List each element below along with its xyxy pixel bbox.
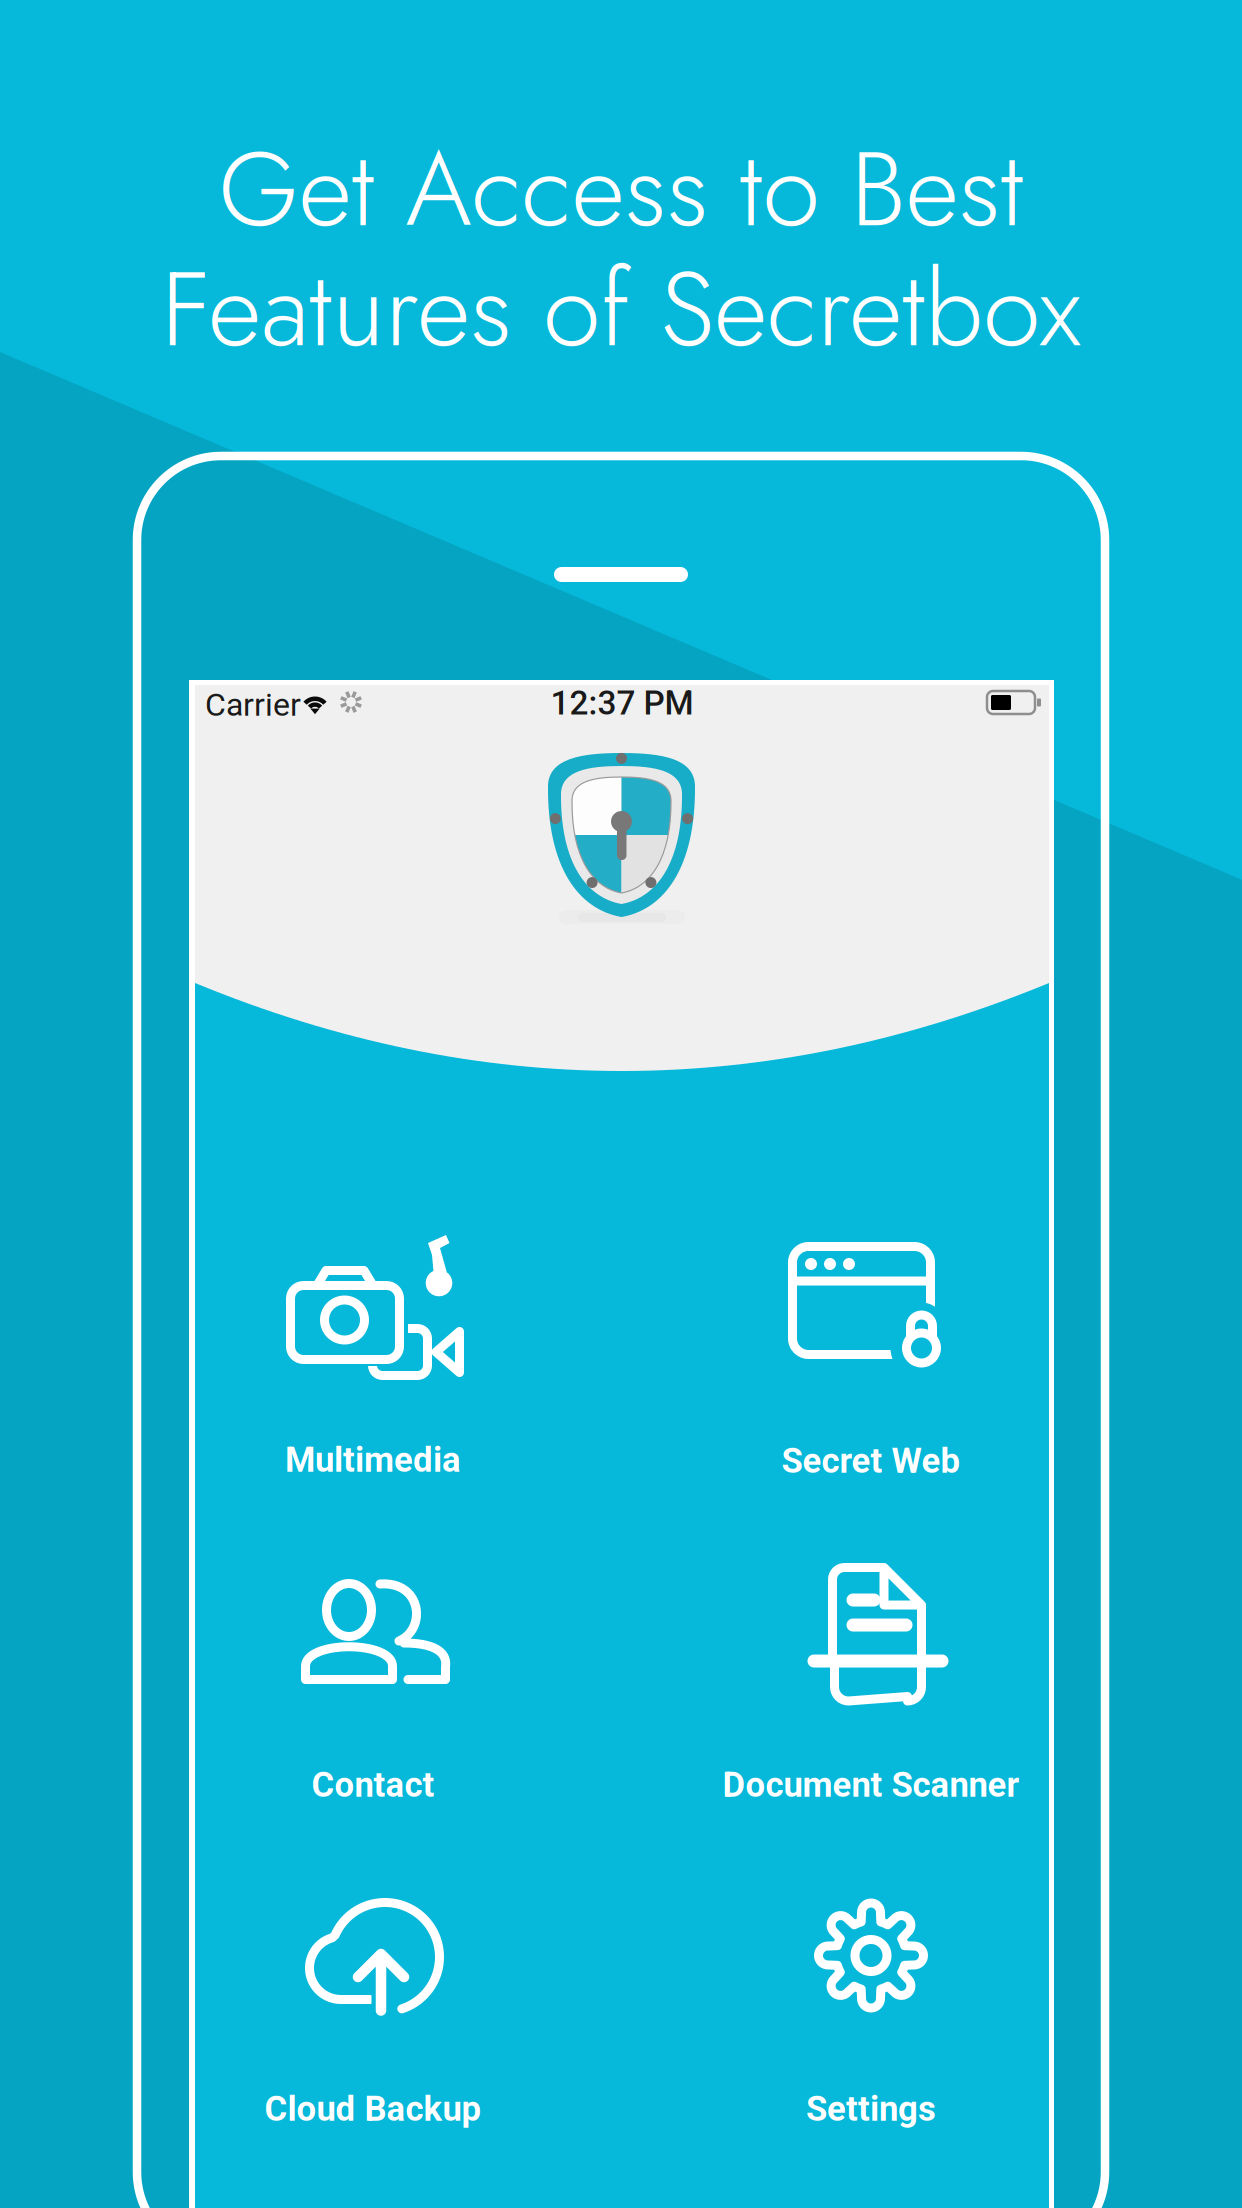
button[interactable]: Document Scanner: [622, 1539, 1049, 1863]
button[interactable]: Contact: [195, 1539, 622, 1863]
staticText: 12:37 PM: [550, 683, 693, 723]
staticText: Get Access to Best: [218, 114, 1023, 264]
button[interactable]: Multimedia: [195, 1215, 622, 1539]
staticText: Multimedia: [285, 1440, 461, 1480]
staticText: Cloud Backup: [264, 2089, 481, 2129]
button[interactable]: Settings: [622, 1863, 1049, 2187]
staticText: Document Scanner: [722, 1765, 1019, 1805]
staticText: Carrier: [205, 686, 301, 723]
staticText: Secret Web: [781, 1441, 960, 1481]
button[interactable]: Cloud Backup: [195, 1863, 622, 2187]
staticText: Settings: [806, 2089, 936, 2129]
button[interactable]: Secret Web: [622, 1215, 1049, 1539]
staticText: Features of Secretbox: [161, 234, 1081, 384]
staticText: Contact: [311, 1765, 434, 1805]
